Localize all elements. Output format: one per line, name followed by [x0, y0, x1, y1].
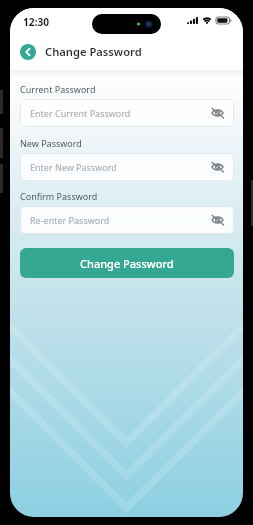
button[interactable]: Back [20, 44, 36, 60]
staticText: Enter Current Password [30, 107, 131, 119]
button[interactable]: Change Password [20, 248, 234, 278]
staticText: Change Password [80, 256, 174, 271]
button[interactable]: Toggle password visibility [209, 105, 225, 121]
button[interactable]: Toggle password visibility [209, 159, 225, 175]
button[interactable]: Enter Current Password [20, 99, 234, 127]
button[interactable]: Re-enter Password [20, 206, 234, 234]
staticText: 12:30 [23, 15, 50, 29]
staticText: Change Password [45, 44, 142, 59]
staticText: Current Password [20, 83, 96, 95]
button[interactable]: Enter New Password [20, 153, 234, 181]
staticText: Re-enter Password [30, 214, 110, 226]
button[interactable]: Toggle password visibility [209, 212, 225, 228]
staticText: New Password [20, 137, 82, 149]
staticText: Confirm Password [20, 190, 98, 202]
staticText: Enter New Password [30, 161, 117, 173]
